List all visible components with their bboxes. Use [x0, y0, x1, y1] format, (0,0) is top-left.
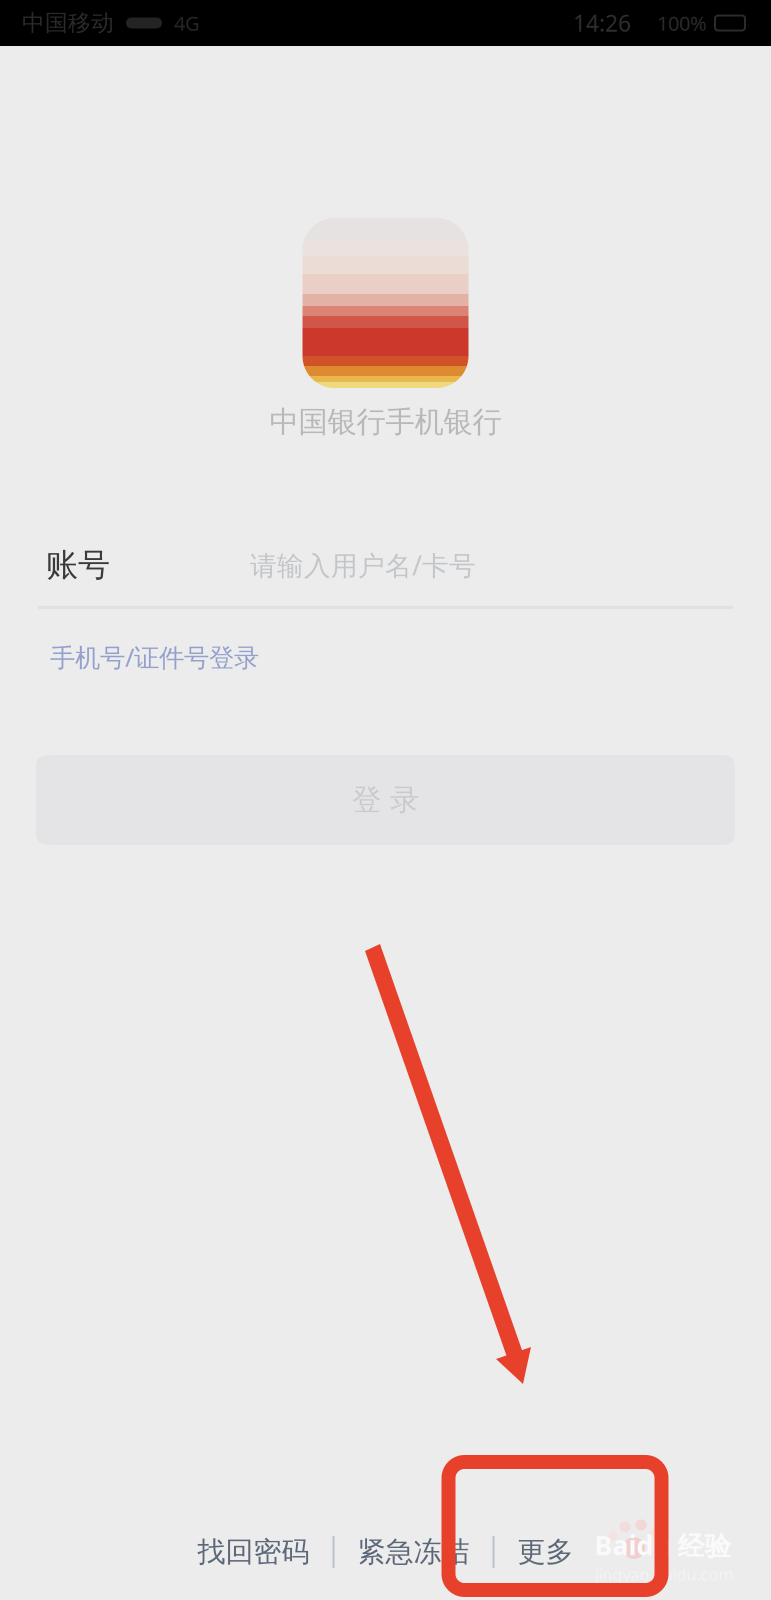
- button[interactable]: 手机号/证件号登录: [0, 609, 771, 705]
- button[interactable]: 登 录: [0, 755, 771, 845]
- staticText: jingyan.baidu.com: [594, 1564, 733, 1585]
- button[interactable]: 更多: [517, 1535, 573, 1569]
- staticText: 账号: [46, 545, 110, 585]
- staticText: 更多: [517, 1535, 573, 1569]
- staticText: 请输入用户名/卡号: [250, 547, 476, 583]
- staticText: 找回密码: [197, 1535, 309, 1569]
- staticText: 中国银行手机银行: [269, 404, 501, 440]
- staticText: 手机号/证件号登录: [50, 640, 259, 674]
- staticText: 中国移动: [22, 9, 114, 37]
- button[interactable]: 紧急冻结: [357, 1535, 469, 1569]
- staticText: 100%: [657, 10, 707, 36]
- staticText: 紧急冻结: [357, 1535, 469, 1569]
- staticText: 14:26: [573, 8, 631, 38]
- staticText: 登 录: [352, 782, 419, 818]
- staticText: Baidu 经验: [594, 1527, 731, 1563]
- button[interactable]: 找回密码: [197, 1535, 309, 1569]
- staticText: 4G: [174, 10, 200, 36]
